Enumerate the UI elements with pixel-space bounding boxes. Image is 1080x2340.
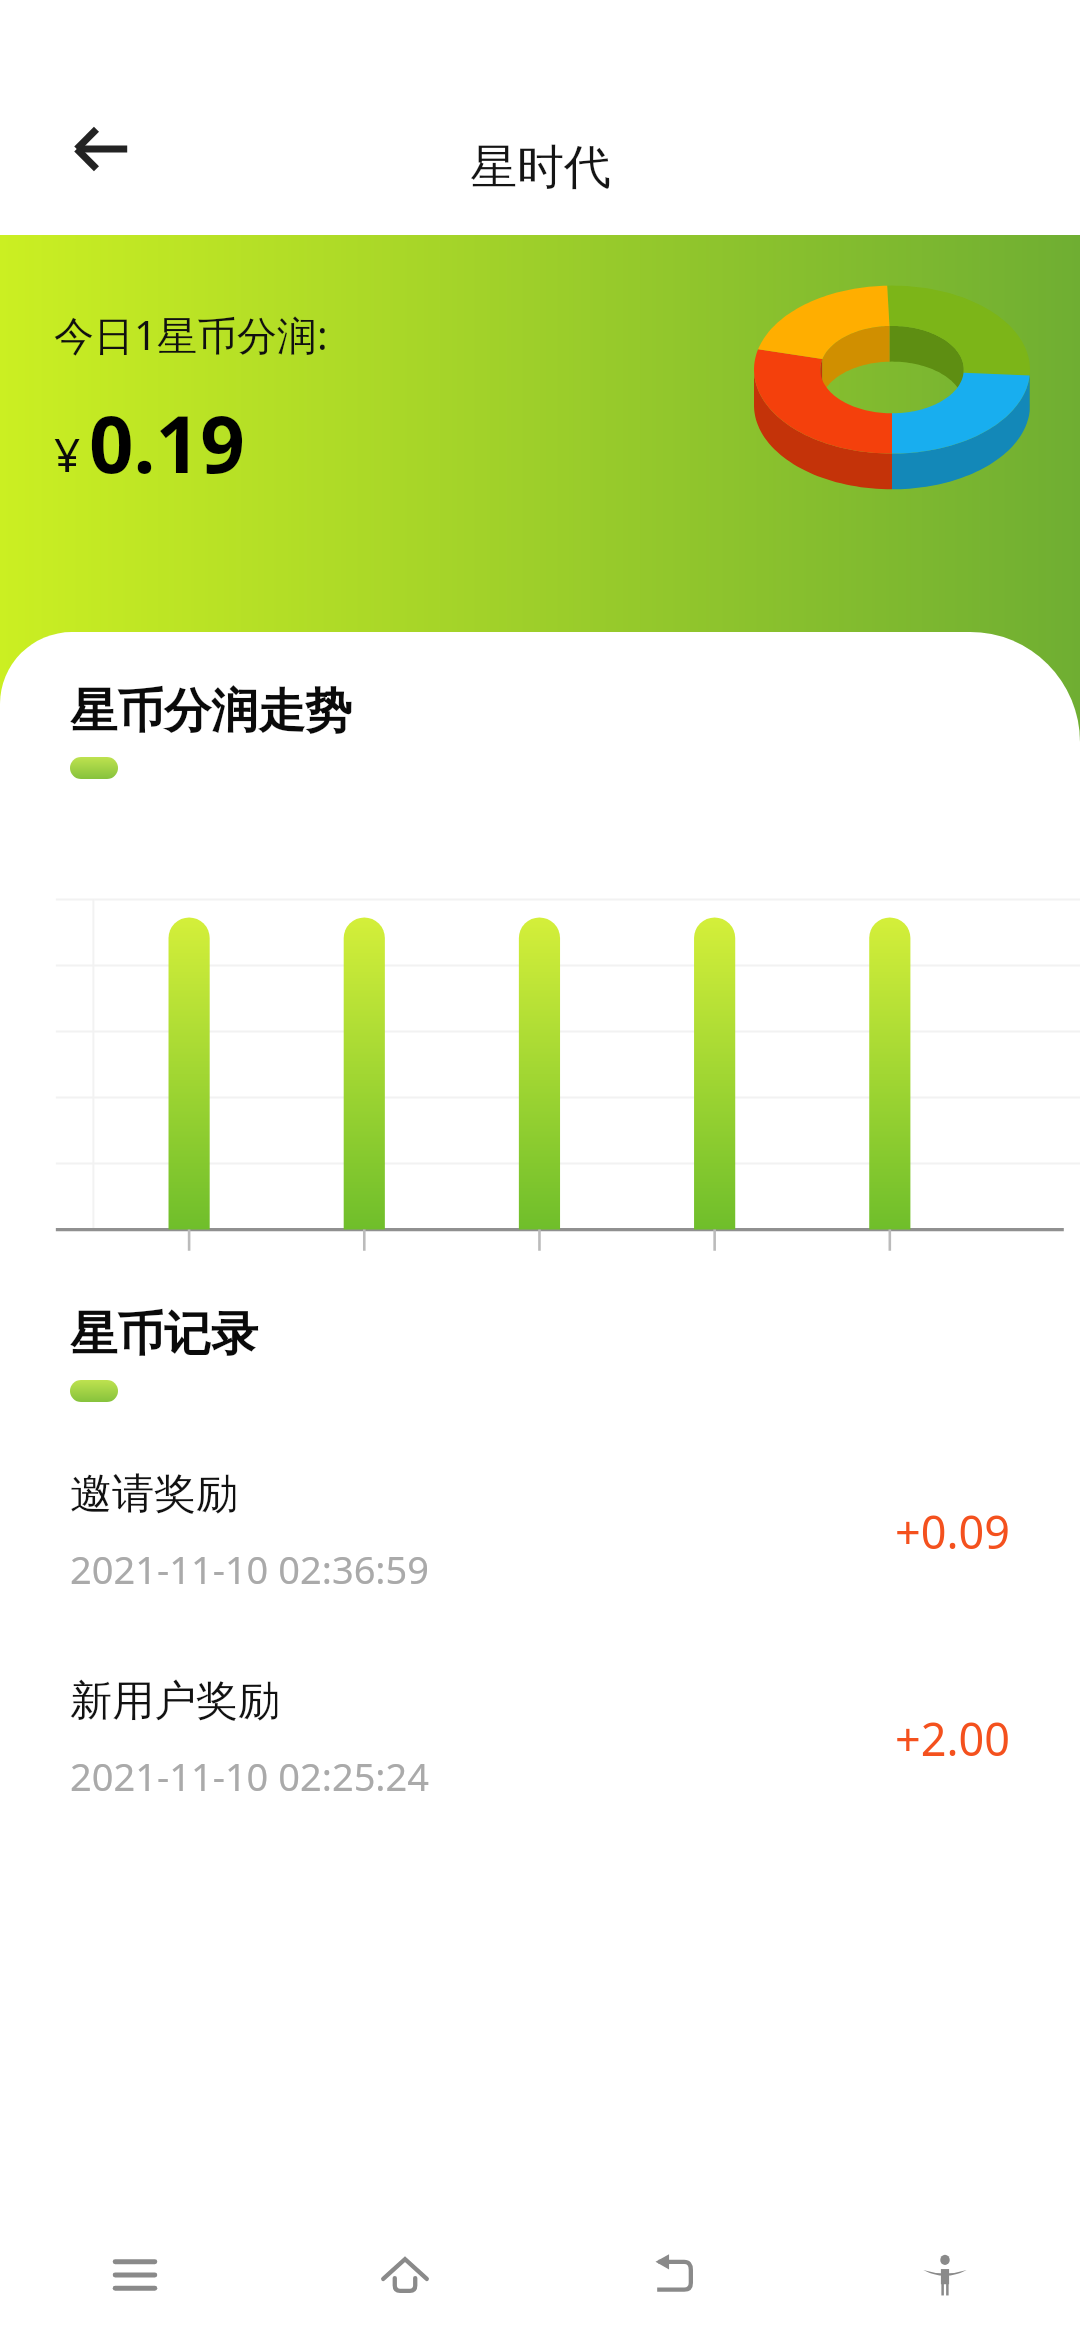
button[interactable]: 邀请奖励 [0, 1468, 1080, 1595]
staticText: +0.09 [894, 1501, 1010, 1562]
button[interactable]: Accessibility [810, 2210, 1080, 2340]
staticText: +2.00 [894, 1708, 1010, 1769]
staticText: 星币分润走势 [70, 682, 352, 741]
button[interactable]: Back [60, 107, 144, 191]
staticText: 新用户奖励 [70, 1675, 280, 1728]
staticText: 星时代 [470, 138, 611, 197]
staticText: 邀请奖励 [70, 1468, 238, 1521]
staticText: 今日1星币分润: [54, 307, 328, 362]
staticText: 2021-11-10 02:25:24 [70, 1750, 430, 1802]
staticText: ¥ [54, 423, 81, 486]
button[interactable]: Home [270, 2210, 540, 2340]
button[interactable]: Back [540, 2210, 810, 2340]
button[interactable]: Menu [0, 2210, 270, 2340]
staticText: 0.19 [89, 390, 245, 496]
staticText: 2021-11-10 02:36:59 [70, 1543, 430, 1595]
button[interactable]: 新用户奖励 [0, 1675, 1080, 1802]
staticText: 星币记录 [70, 1305, 258, 1364]
